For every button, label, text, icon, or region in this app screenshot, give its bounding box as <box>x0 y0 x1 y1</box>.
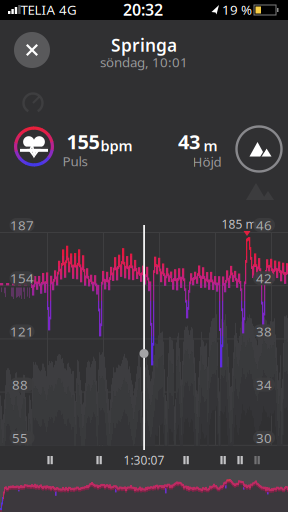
staticText: Springa <box>111 33 177 56</box>
staticText: söndag, 10:01 <box>100 53 188 71</box>
staticText: 1:30:07 <box>123 452 164 468</box>
staticText: 20:32 <box>123 0 163 20</box>
staticText: 43 <box>178 128 200 155</box>
staticText: 88 <box>12 376 28 393</box>
staticText: 38 <box>256 322 272 340</box>
button[interactable]: Puls <box>14 126 54 166</box>
staticText: 155 <box>66 128 99 155</box>
staticText: 19 % <box>222 1 252 18</box>
staticText: 121 <box>10 322 34 340</box>
staticText: 4G <box>59 1 77 18</box>
staticText: 46 <box>256 216 272 234</box>
staticText: m <box>203 136 217 155</box>
staticText: 187 <box>10 216 34 234</box>
staticText: 30 <box>256 429 272 447</box>
staticText: 55 <box>12 429 28 447</box>
button[interactable]: Close <box>14 32 50 68</box>
staticText: 34 <box>256 376 272 393</box>
staticText: TELIA <box>20 1 55 18</box>
staticText: 185 m <box>221 216 256 232</box>
button[interactable]: Höjd <box>236 126 281 171</box>
staticText: Puls <box>62 152 87 170</box>
staticText: 42 <box>256 269 272 287</box>
staticText: bpm <box>100 136 132 155</box>
staticText: 154 <box>10 269 34 287</box>
staticText: Höjd <box>192 153 221 170</box>
